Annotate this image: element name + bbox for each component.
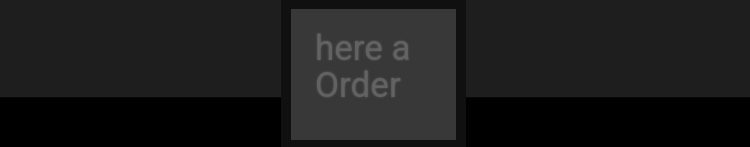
- button[interactable]: Dismiss dialog: [0, 0, 281, 147]
- button[interactable]: here a Order: [291, 9, 456, 140]
- button[interactable]: Dismiss dialog: [466, 0, 750, 147]
- staticText: here a Order: [315, 28, 411, 105]
